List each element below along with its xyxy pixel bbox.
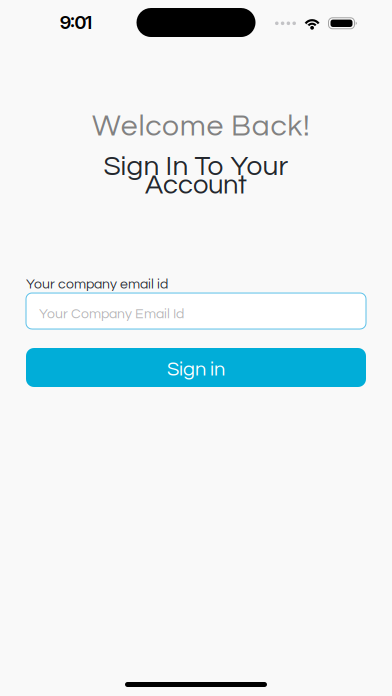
- staticText: Your company email id: [26, 277, 168, 291]
- staticText: 9:01: [59, 11, 93, 34]
- staticText: Welcome Back!: [92, 111, 310, 142]
- staticText: Account: [145, 171, 247, 199]
- button[interactable]: Sign in: [26, 348, 366, 387]
- staticText: Sign In To Your: [103, 152, 288, 181]
- staticText: Sign in: [167, 359, 225, 380]
- staticText: Your Company Email Id: [39, 307, 184, 321]
